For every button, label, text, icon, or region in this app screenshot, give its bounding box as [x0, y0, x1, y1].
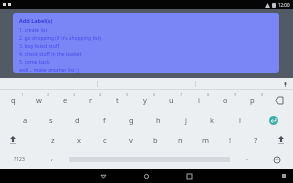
staticText: e [63, 95, 68, 105]
button[interactable]: Back [98, 171, 109, 182]
button[interactable]: v [118, 130, 143, 150]
button[interactable]: z [40, 130, 66, 150]
button[interactable]: q [0, 90, 26, 110]
staticText: p [250, 95, 255, 105]
button[interactable]: b [143, 130, 168, 150]
staticText: u [169, 95, 174, 105]
button[interactable]: Space [65, 150, 233, 169]
staticText: g [129, 115, 134, 125]
button[interactable]: h [145, 110, 172, 130]
staticText: d [75, 115, 80, 125]
button[interactable]: w [26, 90, 52, 110]
staticText: 1 [21, 92, 24, 97]
staticText: 4 [99, 92, 102, 97]
button[interactable]: ! [218, 130, 243, 150]
staticText: x [77, 135, 81, 145]
staticText: 1. create list [19, 27, 48, 34]
button[interactable]: d [64, 110, 91, 130]
button[interactable]: Emoji [260, 150, 293, 169]
button[interactable]: j [172, 110, 199, 130]
staticText: 2. go shopping (if it's shopping list) [19, 35, 101, 42]
staticText: ?123 [14, 156, 25, 163]
staticText: 8 [207, 92, 210, 97]
button[interactable]: x [66, 130, 92, 150]
button[interactable]: Backspace [266, 90, 293, 110]
staticText: r [89, 95, 93, 105]
staticText: 3. buy listed stuff [19, 43, 60, 50]
button[interactable]: n [168, 130, 193, 150]
button[interactable]: a [12, 110, 38, 130]
button[interactable]: Enter [253, 110, 293, 130]
button[interactable]: , [38, 150, 65, 169]
button[interactable]: e [52, 90, 78, 110]
button[interactable]: Keyboard [280, 172, 288, 180]
button[interactable]: g [118, 110, 145, 130]
staticText: 2 [47, 92, 50, 97]
staticText: v [129, 135, 133, 145]
staticText: 5. come back [19, 59, 50, 66]
button[interactable]: r [78, 90, 104, 110]
staticText: 6 [153, 92, 156, 97]
button[interactable]: f [91, 110, 118, 130]
staticText: f [103, 115, 106, 125]
staticText: i [198, 95, 200, 105]
staticText: j [185, 115, 187, 125]
staticText: q [11, 95, 16, 105]
staticText: z [51, 135, 55, 145]
staticText: 3 [73, 92, 76, 97]
button[interactable]: Home [141, 171, 152, 182]
staticText: a [23, 115, 28, 125]
staticText: , [51, 153, 53, 163]
button[interactable]: m [193, 130, 218, 150]
staticText: 9 [234, 92, 237, 97]
button[interactable]: o [212, 90, 239, 110]
button[interactable]: Voice input [281, 80, 289, 88]
staticText: c [103, 135, 107, 145]
staticText: k [210, 115, 215, 125]
staticText: b [153, 135, 158, 145]
staticText: well... make another list :) [19, 67, 79, 73]
staticText: w [36, 95, 42, 105]
button[interactable]: u [158, 90, 185, 110]
button[interactable]: Recents [184, 171, 195, 182]
button[interactable]: p [239, 90, 266, 110]
staticText: n [178, 135, 183, 145]
staticText: l [239, 115, 241, 125]
button[interactable]: ?123 [0, 150, 38, 169]
staticText: o [223, 95, 228, 105]
staticText: m [202, 135, 210, 145]
staticText: Add Label(s) [19, 17, 53, 24]
button[interactable]: y [131, 90, 158, 110]
staticText: 12:00 [278, 2, 290, 8]
button[interactable]: ? [243, 130, 268, 150]
button[interactable]: i [185, 90, 212, 110]
staticText: 7 [180, 92, 183, 97]
staticText: 4. check stuff in the basket [19, 51, 82, 58]
staticText: y [143, 95, 147, 105]
staticText: 0 [261, 92, 264, 97]
button[interactable]: Shift [268, 130, 293, 150]
staticText: ? [254, 135, 258, 145]
button[interactable]: c [92, 130, 118, 150]
staticText: h [156, 115, 161, 125]
staticText: . [246, 153, 248, 163]
button[interactable]: t [104, 90, 131, 110]
button[interactable]: Shift [0, 130, 26, 150]
button[interactable]: l [226, 110, 253, 130]
staticText: 5 [126, 92, 129, 97]
staticText: s [49, 115, 53, 125]
staticText: ! [229, 135, 232, 145]
button[interactable]: k [199, 110, 226, 130]
button[interactable]: s [38, 110, 64, 130]
staticText: t [116, 95, 119, 105]
